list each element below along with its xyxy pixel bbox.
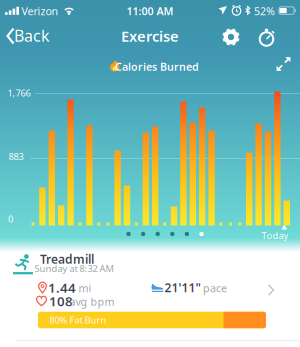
staticText: 11:00 AM (126, 4, 173, 18)
button[interactable]: Stopwatch (255, 26, 277, 48)
staticText: Today (261, 229, 288, 242)
staticText: Verizon (21, 4, 58, 18)
staticText: 80% Fat Burn (49, 314, 106, 326)
staticText: pace (203, 281, 227, 295)
staticText: Calories Burned (115, 59, 199, 74)
staticText: Back (14, 25, 50, 46)
button[interactable]: Expand chart (276, 57, 290, 71)
staticText: 108 (49, 292, 73, 310)
button[interactable]: Treadmill (0, 251, 300, 347)
staticText: 1.44 (48, 279, 76, 296)
staticText: avg bpm (69, 294, 114, 309)
staticText: 883 (8, 150, 23, 163)
button[interactable]: Settings (220, 26, 242, 48)
staticText: 1,766 (7, 87, 30, 99)
staticText: 52% (254, 4, 275, 18)
staticText: Sunday at 8:32 AM (34, 262, 113, 275)
staticText: Treadmill (40, 251, 94, 267)
staticText: mi (78, 281, 91, 295)
staticText: Exercise (121, 26, 179, 46)
button[interactable]: Back (5, 25, 51, 47)
staticText: 21'11" (164, 279, 200, 295)
staticText: 0 (8, 213, 13, 225)
